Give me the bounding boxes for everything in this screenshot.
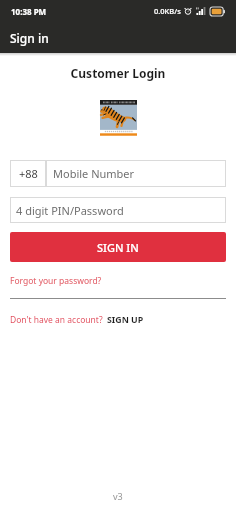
staticText: 0.0KB/s [154,6,181,16]
staticText: Mobile Number [53,166,135,181]
staticText: SIGN IN [97,240,139,255]
button[interactable]: Mobile Number [46,160,226,187]
button[interactable]: SIGN UP [107,314,144,326]
staticText: +88 [19,166,38,181]
button[interactable]: Forgot your password? [10,275,102,287]
button[interactable]: SIGN IN [10,232,226,262]
button[interactable]: 4 digit PIN/Password [10,197,226,223]
staticText: Don't have an account? [10,314,103,326]
staticText: 4 digit PIN/Password [16,203,124,218]
staticText: v3 [113,490,123,502]
staticText: Sign in [10,30,49,46]
staticText: Customer Login [10,65,226,81]
button[interactable]: +88 [10,160,46,187]
staticText: 10:38 PM [11,6,47,17]
other: The Fish & The Machine logo [10,100,226,136]
